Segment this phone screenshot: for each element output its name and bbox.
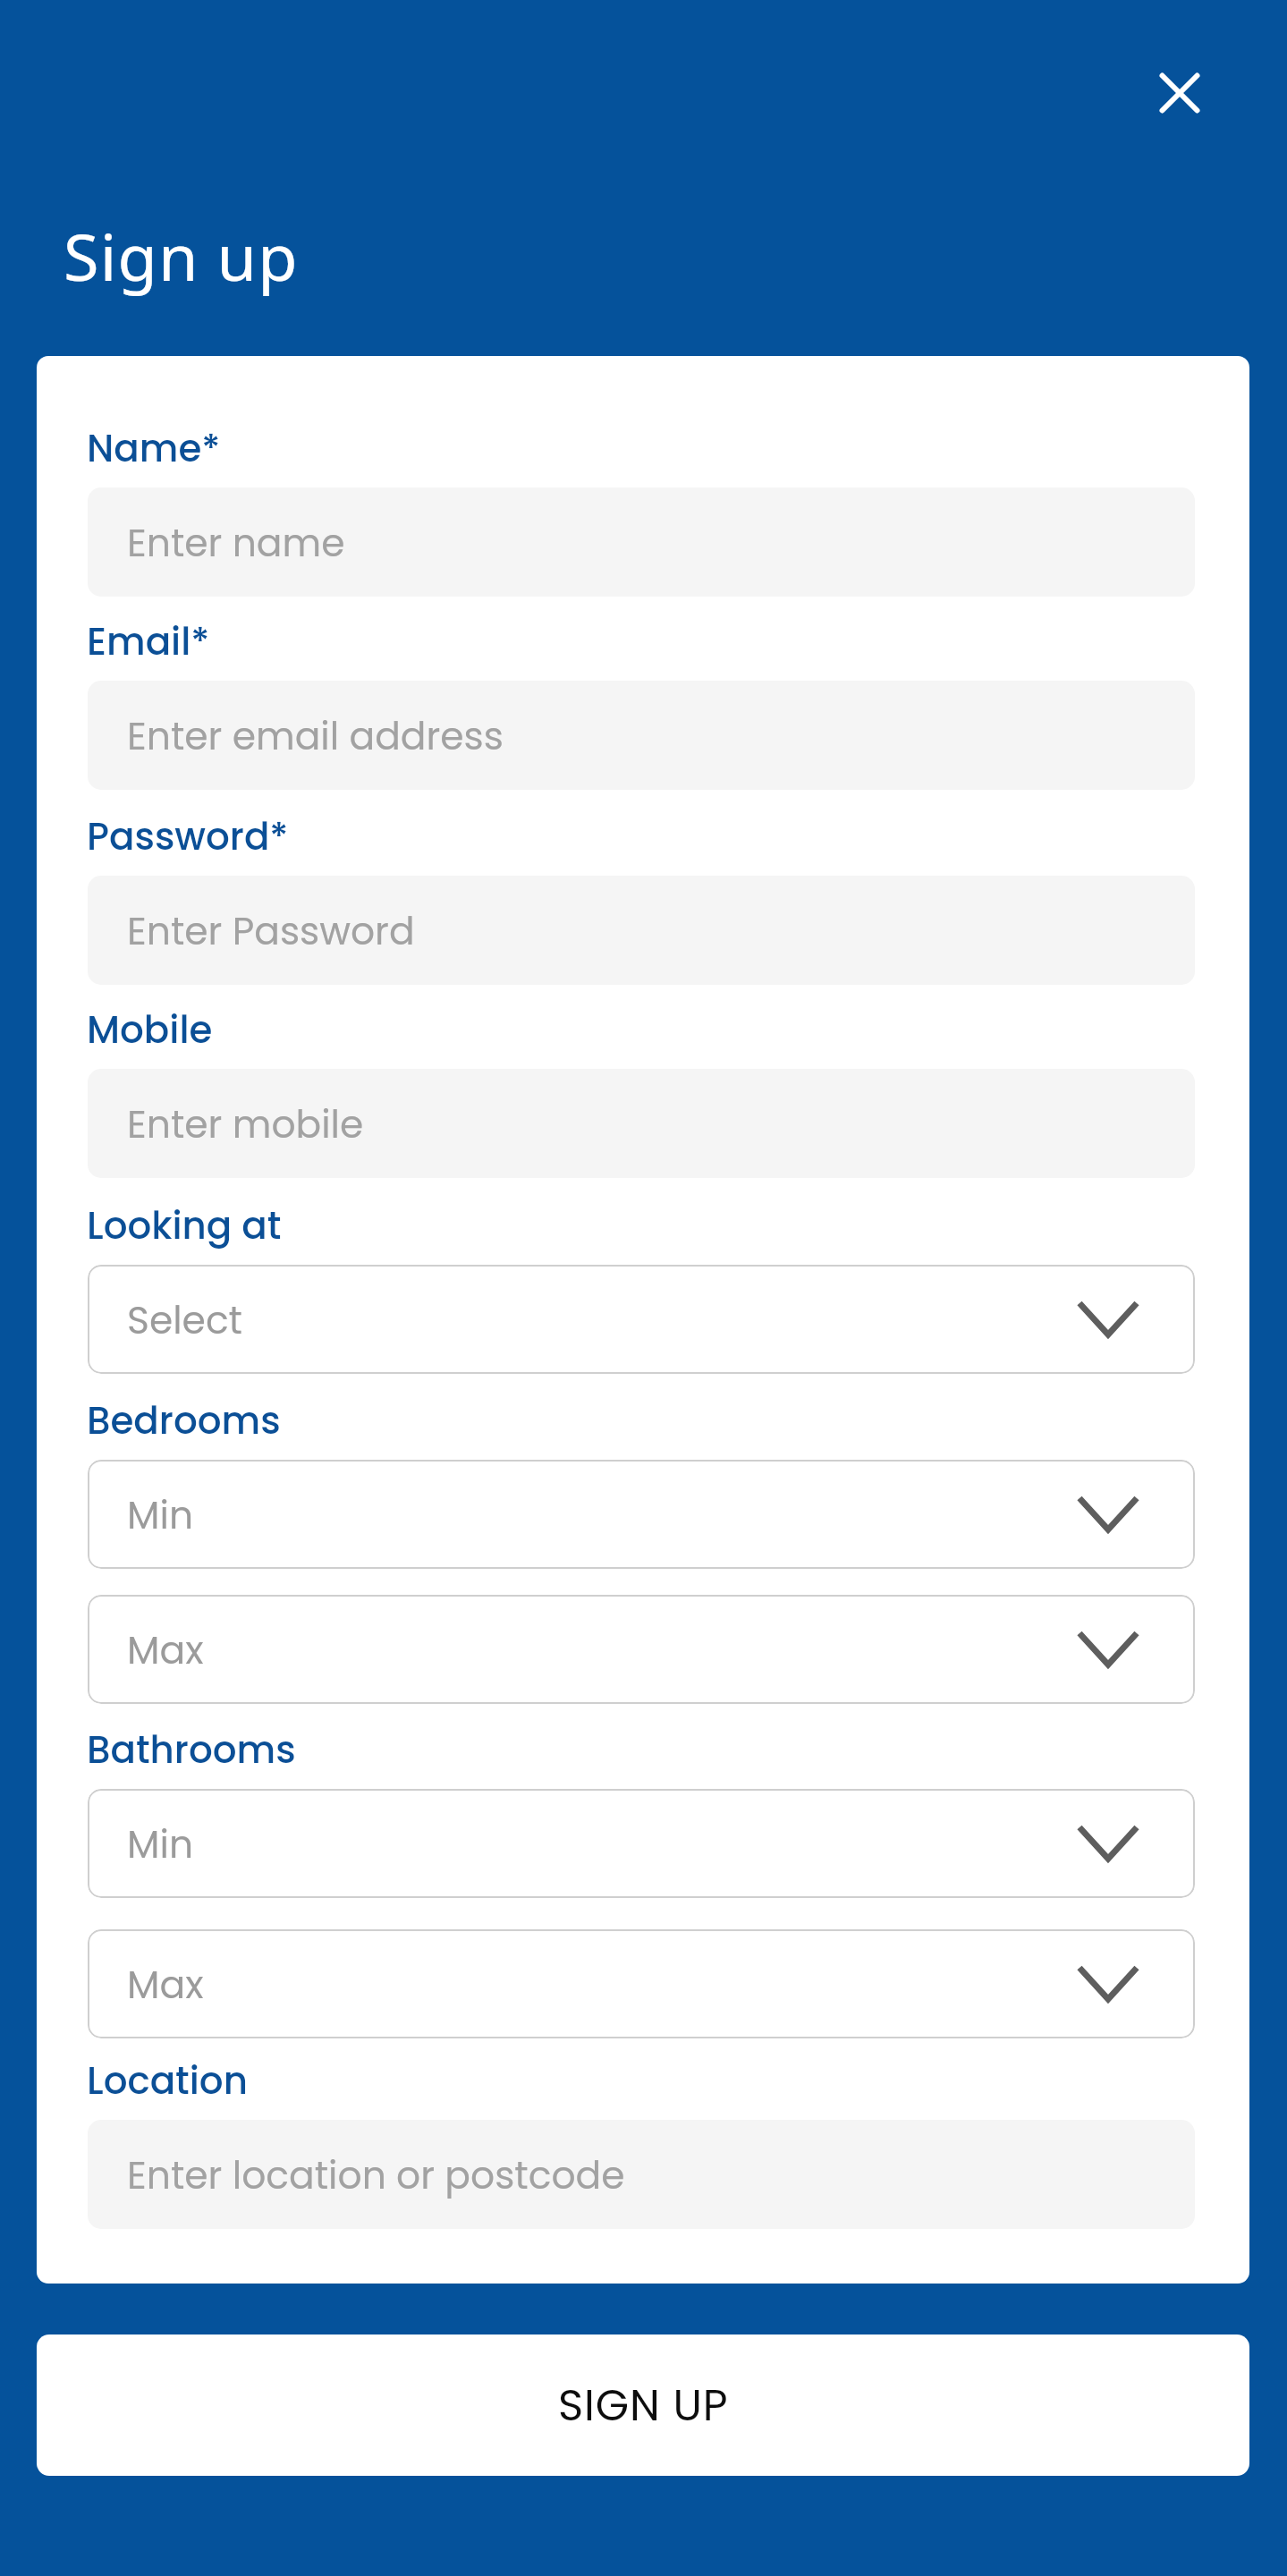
staticText: SIGN UP <box>558 2376 729 2436</box>
staticText: Enter email address <box>127 709 504 762</box>
button[interactable]: Close <box>1139 52 1221 134</box>
staticText: Sign up <box>64 212 299 300</box>
staticText: Location <box>87 2055 248 2107</box>
staticText: Mobile <box>87 1004 213 1056</box>
button[interactable]: Enter Password <box>88 876 1195 985</box>
staticText: Max <box>127 1958 204 2011</box>
staticText: Enter name <box>127 516 345 569</box>
button[interactable]: Select <box>88 1265 1195 1374</box>
staticText: Looking at <box>87 1199 282 1252</box>
button[interactable]: Enter name <box>88 487 1195 597</box>
staticText: Select <box>127 1293 243 1346</box>
staticText: Max <box>127 1623 204 1676</box>
button[interactable]: Enter mobile <box>88 1069 1195 1178</box>
staticText: Enter mobile <box>127 1097 364 1150</box>
button[interactable]: Min <box>88 1789 1195 1898</box>
button[interactable]: Enter location or postcode <box>88 2120 1195 2229</box>
button[interactable]: SIGN UP <box>37 2334 1249 2476</box>
staticText: Password* <box>87 810 289 863</box>
staticText: Bedrooms <box>87 1394 281 1447</box>
staticText: Enter location or postcode <box>127 2148 625 2201</box>
button[interactable]: Enter email address <box>88 681 1195 790</box>
button[interactable]: Max <box>88 1929 1195 2038</box>
staticText: Bathrooms <box>87 1724 296 1776</box>
button[interactable]: Max <box>88 1595 1195 1704</box>
staticText: Name* <box>87 422 221 475</box>
button[interactable]: Min <box>88 1460 1195 1569</box>
staticText: Email* <box>87 615 210 668</box>
staticText: Enter Password <box>127 904 415 957</box>
staticText: Min <box>127 1488 194 1541</box>
staticText: Min <box>127 1818 194 1870</box>
